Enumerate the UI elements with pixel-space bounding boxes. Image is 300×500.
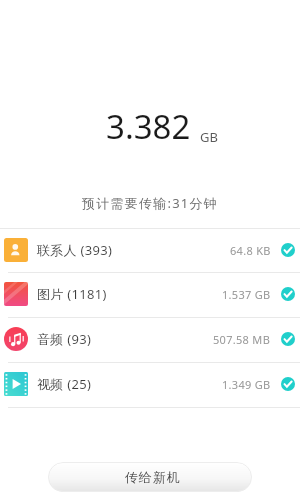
staticText: 507.58 MB [213,332,271,347]
staticText: 视频 (25) [37,375,92,393]
staticText: 3.382 [106,104,191,149]
staticText: 1.349 GB [222,377,271,392]
staticText: 联系人 (393) [37,241,113,259]
staticText: 预计需要传输:31分钟 [0,194,300,212]
button[interactable]: 传给新机 [48,462,252,492]
other: Selected [281,377,295,391]
button[interactable]: 视频 (25) [0,362,300,406]
button[interactable]: 图片 (1181) [0,272,300,316]
staticText: 传给新机 [125,469,181,485]
staticText: 1.537 GB [222,287,271,302]
staticText: 图片 (1181) [37,285,107,303]
staticText: 64.8 KB [230,243,271,258]
other: Selected [281,243,295,257]
staticText: GB [200,128,218,146]
staticText: 音频 (93) [37,330,92,348]
button[interactable]: 联系人 (393) [0,228,300,272]
other: Selected [281,287,295,301]
other: Selected [281,332,295,346]
button[interactable]: 音频 (93) [0,317,300,361]
